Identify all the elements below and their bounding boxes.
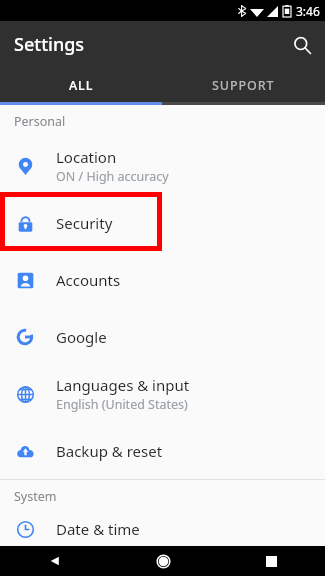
button[interactable]: Home: [109, 546, 217, 576]
button[interactable]: Languages & input: [0, 365, 325, 422]
button[interactable]: Location: [0, 137, 325, 194]
staticText: Location: [56, 147, 117, 167]
staticText: Personal: [14, 113, 66, 130]
button[interactable]: Date & time: [0, 512, 325, 546]
button[interactable]: SUPPORT: [162, 68, 325, 102]
button[interactable]: Backup & reset: [0, 422, 325, 479]
staticText: Languages & input: [56, 375, 190, 395]
staticText: ON / High accuracy: [56, 168, 169, 185]
staticText: English (United States): [56, 396, 188, 413]
button[interactable]: Google: [0, 308, 325, 365]
staticText: SUPPORT: [212, 77, 275, 94]
button[interactable]: Accounts: [0, 251, 325, 308]
staticText: ALL: [69, 77, 94, 94]
button[interactable]: Security: [0, 194, 325, 251]
staticText: 3:46: [296, 3, 320, 19]
staticText: Backup & reset: [56, 441, 163, 461]
staticText: System: [14, 488, 57, 505]
staticText: Settings: [14, 32, 85, 57]
staticText: Google: [56, 327, 107, 347]
button[interactable]: Search: [279, 22, 325, 68]
staticText: Date & time: [56, 519, 140, 539]
button[interactable]: Recent apps: [217, 546, 325, 576]
button[interactable]: ALL: [0, 68, 162, 102]
button[interactable]: Back: [0, 546, 109, 576]
staticText: Accounts: [56, 270, 121, 290]
staticText: Security: [56, 213, 113, 233]
